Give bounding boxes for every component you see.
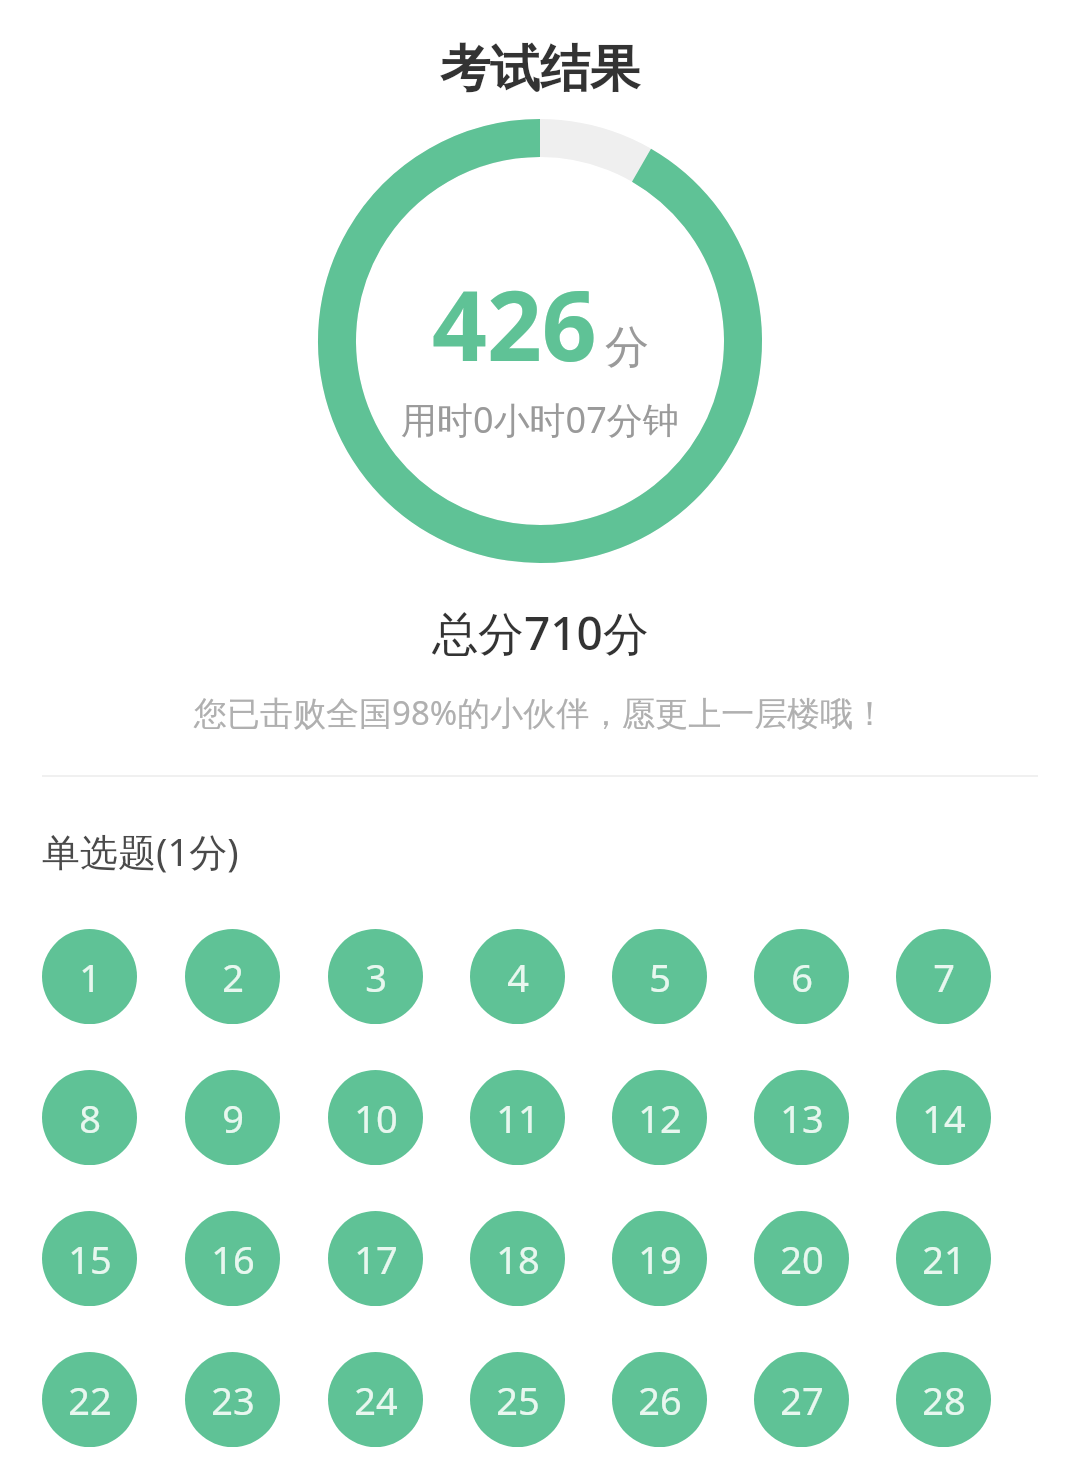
button[interactable]: 题目 22 <box>42 1352 137 1447</box>
staticText: 13 <box>780 1092 824 1144</box>
staticText: 5 <box>649 951 671 1003</box>
staticText: 分 <box>605 320 649 375</box>
button[interactable]: 题目 10 <box>328 1070 423 1165</box>
button[interactable]: 题目 15 <box>42 1211 137 1306</box>
button[interactable]: 题目 7 <box>896 929 991 1024</box>
button[interactable]: 题目 8 <box>42 1070 137 1165</box>
staticText: 17 <box>354 1233 398 1285</box>
staticText: 27 <box>780 1374 824 1426</box>
button[interactable]: 题目 27 <box>754 1352 849 1447</box>
button[interactable]: 题目 2 <box>185 929 280 1024</box>
button[interactable]: 题目 6 <box>754 929 849 1024</box>
button[interactable]: 题目 25 <box>470 1352 565 1447</box>
button[interactable]: 题目 9 <box>185 1070 280 1165</box>
staticText: 22 <box>68 1374 112 1426</box>
staticText: 25 <box>496 1374 540 1426</box>
button[interactable]: 题目 4 <box>470 929 565 1024</box>
staticText: 8 <box>79 1092 101 1144</box>
staticText: 您已击败全国98%的小伙伴，愿更上一层楼哦！ <box>194 690 887 735</box>
staticText: 20 <box>780 1233 824 1285</box>
button[interactable]: 题目 28 <box>896 1352 991 1447</box>
staticText: 15 <box>68 1233 112 1285</box>
button[interactable]: 题目 16 <box>185 1211 280 1306</box>
staticText: 23 <box>211 1374 255 1426</box>
staticText: 12 <box>638 1092 682 1144</box>
staticText: 用时0小时07分钟 <box>401 395 679 444</box>
staticText: 总分710分 <box>432 601 649 664</box>
button[interactable]: 题目 14 <box>896 1070 991 1165</box>
staticText: 9 <box>222 1092 244 1144</box>
staticText: 19 <box>638 1233 682 1285</box>
staticText: 2 <box>222 951 244 1003</box>
staticText: 16 <box>211 1233 255 1285</box>
staticText: 14 <box>922 1092 966 1144</box>
staticText: 24 <box>354 1374 398 1426</box>
staticText: 11 <box>496 1092 540 1144</box>
staticText: 4 <box>507 951 529 1003</box>
button[interactable]: 题目 13 <box>754 1070 849 1165</box>
staticText: 10 <box>354 1092 398 1144</box>
button[interactable]: 题目 24 <box>328 1352 423 1447</box>
staticText: 426 <box>432 258 597 389</box>
staticText: 21 <box>922 1233 966 1285</box>
staticText: 7 <box>933 951 955 1003</box>
button[interactable]: 题目 3 <box>328 929 423 1024</box>
staticText: 单选题(1分) <box>42 825 239 877</box>
staticText: 3 <box>365 951 387 1003</box>
staticText: 18 <box>496 1233 540 1285</box>
button[interactable]: 题目 18 <box>470 1211 565 1306</box>
button[interactable]: 题目 1 <box>42 929 137 1024</box>
staticText: 28 <box>922 1374 966 1426</box>
button[interactable]: 题目 5 <box>612 929 707 1024</box>
staticText: 6 <box>791 951 813 1003</box>
staticText: 考试结果 <box>440 38 640 101</box>
button[interactable]: 题目 21 <box>896 1211 991 1306</box>
button[interactable]: 题目 17 <box>328 1211 423 1306</box>
button[interactable]: 题目 11 <box>470 1070 565 1165</box>
button[interactable]: 题目 26 <box>612 1352 707 1447</box>
button[interactable]: 题目 20 <box>754 1211 849 1306</box>
staticText: 26 <box>638 1374 682 1426</box>
staticText: 1 <box>79 951 101 1003</box>
button[interactable]: 题目 12 <box>612 1070 707 1165</box>
button[interactable]: 题目 19 <box>612 1211 707 1306</box>
button[interactable]: 题目 23 <box>185 1352 280 1447</box>
